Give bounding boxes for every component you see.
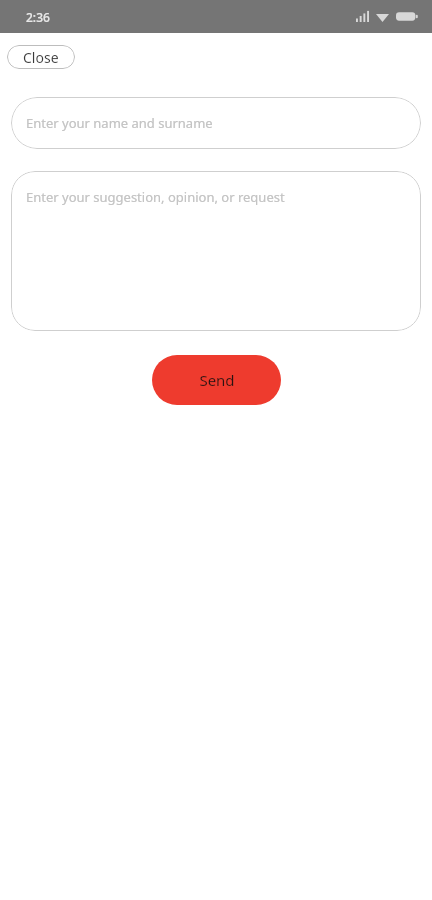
staticText: 2:36 [26,9,50,25]
staticText: Close [23,48,59,67]
staticText: Send [199,370,235,390]
staticText: Enter your name and surname [26,114,213,132]
button[interactable]: Enter your suggestion, opinion, or reque… [11,171,421,331]
button[interactable]: Send [152,355,281,405]
button[interactable]: Enter your name and surname [11,97,421,149]
staticText: Enter your suggestion, opinion, or reque… [26,188,285,206]
button[interactable]: Close [7,45,75,69]
